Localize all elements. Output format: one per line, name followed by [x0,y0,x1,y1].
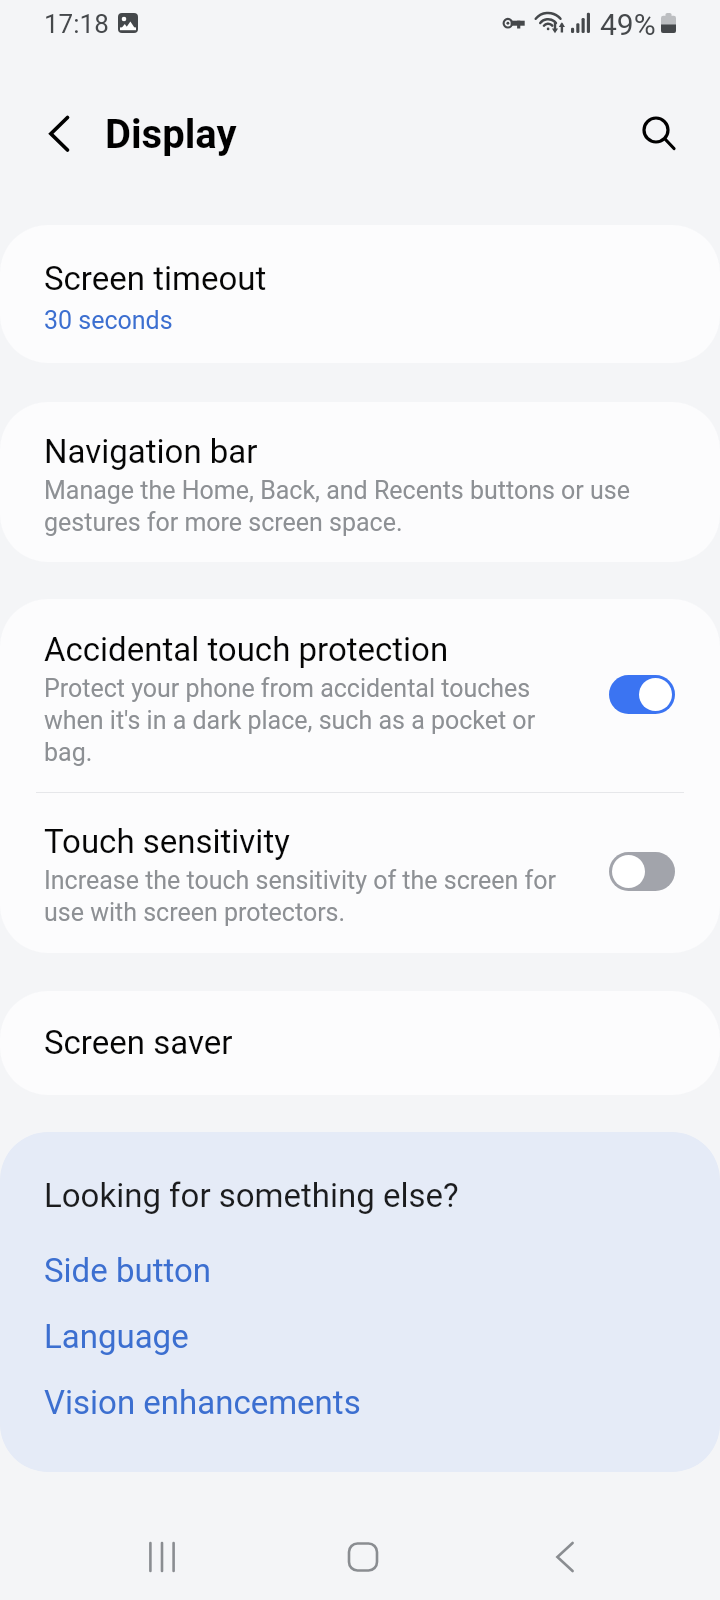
staticText: Looking for something else? [44,1176,459,1215]
button[interactable]: Navigation bar [0,402,720,562]
button[interactable]: Recent apps [122,1517,202,1597]
staticText: Language [44,1317,189,1356]
staticText: Display [105,111,237,158]
button[interactable]: Accidental touch protection [0,599,720,792]
button[interactable]: Back [28,103,90,165]
staticText: 17:18 [44,9,109,39]
staticText: Touch sensitivity [44,822,290,861]
button[interactable]: Touch sensitivity [0,793,720,953]
button[interactable]: Screen saver [0,991,720,1095]
staticText: Increase the touch sensitivity of the sc… [44,866,589,927]
staticText: Protect your phone from accidental touch… [44,674,569,767]
staticText: 49% [600,7,656,42]
button[interactable]: Switch on [609,675,675,714]
staticText: Vision enhancements [44,1383,361,1422]
staticText: Manage the Home, Back, and Recents butto… [44,476,684,537]
button[interactable]: Side button [44,1251,211,1290]
staticText: Screen timeout [44,259,267,298]
button[interactable]: Back [525,1517,605,1597]
button[interactable]: Vision enhancements [44,1383,361,1422]
staticText: Accidental touch protection [44,630,449,669]
staticText: Screen saver [44,1023,233,1062]
button[interactable]: Switch off [609,852,675,891]
staticText: 30 seconds [44,306,173,335]
button[interactable]: Language [44,1317,189,1356]
staticText: Navigation bar [44,432,258,471]
staticText: Side button [44,1251,211,1290]
button[interactable]: Screen timeout [0,225,720,363]
button[interactable]: Home [323,1517,403,1597]
button[interactable]: Search [628,102,690,164]
